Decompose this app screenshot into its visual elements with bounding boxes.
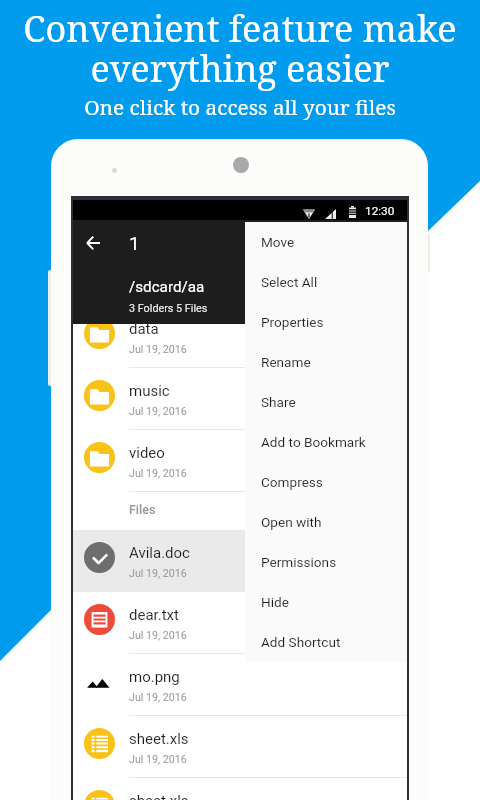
button[interactable]: sheet.xls bbox=[73, 716, 407, 778]
button[interactable]: Properties bbox=[245, 302, 407, 342]
staticText: Jul 19, 2016 bbox=[129, 753, 187, 766]
button[interactable]: sheet.xls bbox=[73, 778, 407, 800]
staticText: Files bbox=[129, 502, 156, 517]
staticText: Open with bbox=[261, 514, 322, 530]
staticText: 3 Folders 5 Files bbox=[129, 302, 208, 315]
staticText: Move bbox=[261, 234, 295, 250]
staticText: Select All bbox=[261, 274, 318, 290]
button[interactable]: Open with bbox=[245, 502, 407, 542]
staticText: sheet.xls bbox=[129, 730, 189, 748]
staticText: Permissions bbox=[261, 554, 337, 570]
staticText: Rename bbox=[261, 354, 311, 370]
staticText: Add to Bookmark bbox=[261, 434, 366, 450]
button[interactable]: Add to Bookmark bbox=[245, 422, 407, 462]
staticText: Add Shortcut bbox=[261, 634, 341, 650]
button[interactable]: Select All bbox=[245, 262, 407, 302]
staticText: 12:30 bbox=[365, 204, 395, 218]
button[interactable]: Hide bbox=[245, 582, 407, 622]
staticText: Jul 19, 2016 bbox=[129, 343, 187, 356]
button[interactable]: Permissions bbox=[245, 542, 407, 582]
staticText: Jul 19, 2016 bbox=[129, 691, 187, 704]
staticText: One click to access all your files bbox=[84, 93, 396, 121]
button[interactable]: Move bbox=[245, 222, 407, 262]
button[interactable]: Compress bbox=[245, 462, 407, 502]
staticText: dear.txt bbox=[129, 606, 179, 624]
button[interactable]: data bbox=[73, 306, 407, 368]
staticText: video bbox=[129, 444, 165, 462]
staticText: mo.png bbox=[129, 668, 180, 686]
staticText: Jul 19, 2016 bbox=[129, 467, 187, 480]
staticText: Avila.doc bbox=[129, 544, 190, 562]
button[interactable]: Avila.doc bbox=[73, 530, 407, 592]
button[interactable]: music bbox=[73, 368, 407, 430]
button[interactable]: Rename bbox=[245, 342, 407, 382]
button[interactable]: mo.png bbox=[73, 654, 407, 716]
staticText: Compress bbox=[261, 474, 323, 490]
staticText: Hide bbox=[261, 594, 289, 610]
button[interactable]: Back bbox=[73, 220, 113, 266]
staticText: 1 bbox=[129, 232, 140, 254]
staticText: Convenient feature make everything easie… bbox=[23, 4, 457, 93]
staticText: Properties bbox=[261, 314, 324, 330]
button[interactable]: dear.txt bbox=[73, 592, 407, 654]
button[interactable]: video bbox=[73, 430, 407, 492]
staticText: data bbox=[129, 320, 159, 338]
staticText: Jul 19, 2016 bbox=[129, 405, 187, 418]
staticText: /sdcard/aa bbox=[129, 278, 205, 296]
staticText: Jul 19, 2016 bbox=[129, 629, 187, 642]
staticText: Jul 19, 2016 bbox=[129, 567, 187, 580]
button[interactable]: Add Shortcut bbox=[245, 622, 407, 662]
button[interactable]: Share bbox=[245, 382, 407, 422]
staticText: music bbox=[129, 382, 170, 400]
staticText: Share bbox=[261, 394, 296, 410]
staticText: sheet.xls bbox=[129, 792, 189, 800]
